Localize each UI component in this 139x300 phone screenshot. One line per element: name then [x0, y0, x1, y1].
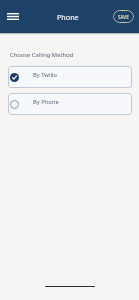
button[interactable]: By Phone [8, 93, 132, 115]
staticText: Choose Calling Method [10, 51, 74, 59]
staticText: By Twilio [33, 71, 57, 79]
button[interactable]: By Twilio [8, 66, 132, 88]
button[interactable]: Open navigation menu [6, 10, 19, 23]
staticText: Phone [57, 12, 79, 22]
staticText: SAVE [118, 14, 129, 20]
staticText: By Phone [33, 98, 59, 106]
button[interactable]: SAVE [113, 10, 134, 23]
